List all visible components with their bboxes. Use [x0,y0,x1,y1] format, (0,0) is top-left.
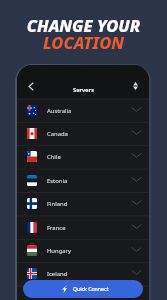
staticText: France [47,224,66,232]
button[interactable]: Iceland [17,262,149,285]
button[interactable]: Chile [17,145,149,168]
staticText: Iceland [47,270,68,278]
staticText: LOCATION [0,31,167,53]
staticText: Estonia [47,177,68,185]
button[interactable]: Quick Connect [23,280,143,298]
button[interactable]: Back [23,78,39,94]
staticText: Finland [47,200,68,208]
button[interactable]: Finland [17,192,149,215]
button[interactable]: Sort [127,78,143,94]
staticText: Hungary [47,247,72,255]
staticText: Servers [73,86,95,94]
staticText: Canada [47,130,68,138]
button[interactable]: Hungary [17,239,149,262]
staticText: CHANGE YOUR [0,14,167,36]
staticText: Quick Connect [73,286,109,293]
button[interactable]: Australia [17,99,149,122]
staticText: Chile [47,153,61,161]
staticText: Australia [47,107,72,115]
button[interactable]: Canada [17,122,149,145]
button[interactable]: France [17,216,149,239]
button[interactable]: Estonia [17,169,149,192]
